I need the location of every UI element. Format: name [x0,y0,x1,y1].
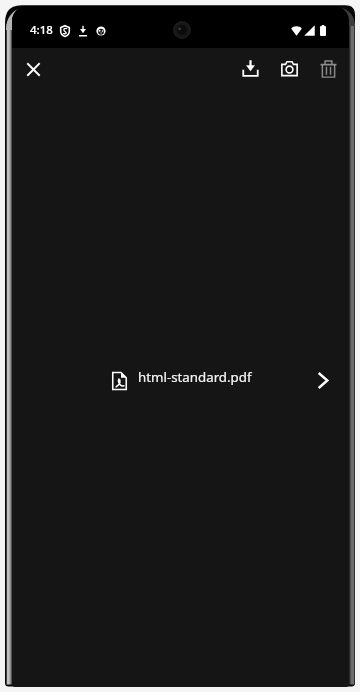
staticText: 4:18 [30,22,53,38]
button[interactable]: html-standard.pdf [12,363,349,411]
button[interactable]: Take photo [271,50,307,86]
button[interactable]: Delete [310,51,346,87]
button[interactable]: Close [15,51,51,87]
button[interactable]: Download [232,50,268,86]
staticText: html-standard.pdf [138,368,252,386]
